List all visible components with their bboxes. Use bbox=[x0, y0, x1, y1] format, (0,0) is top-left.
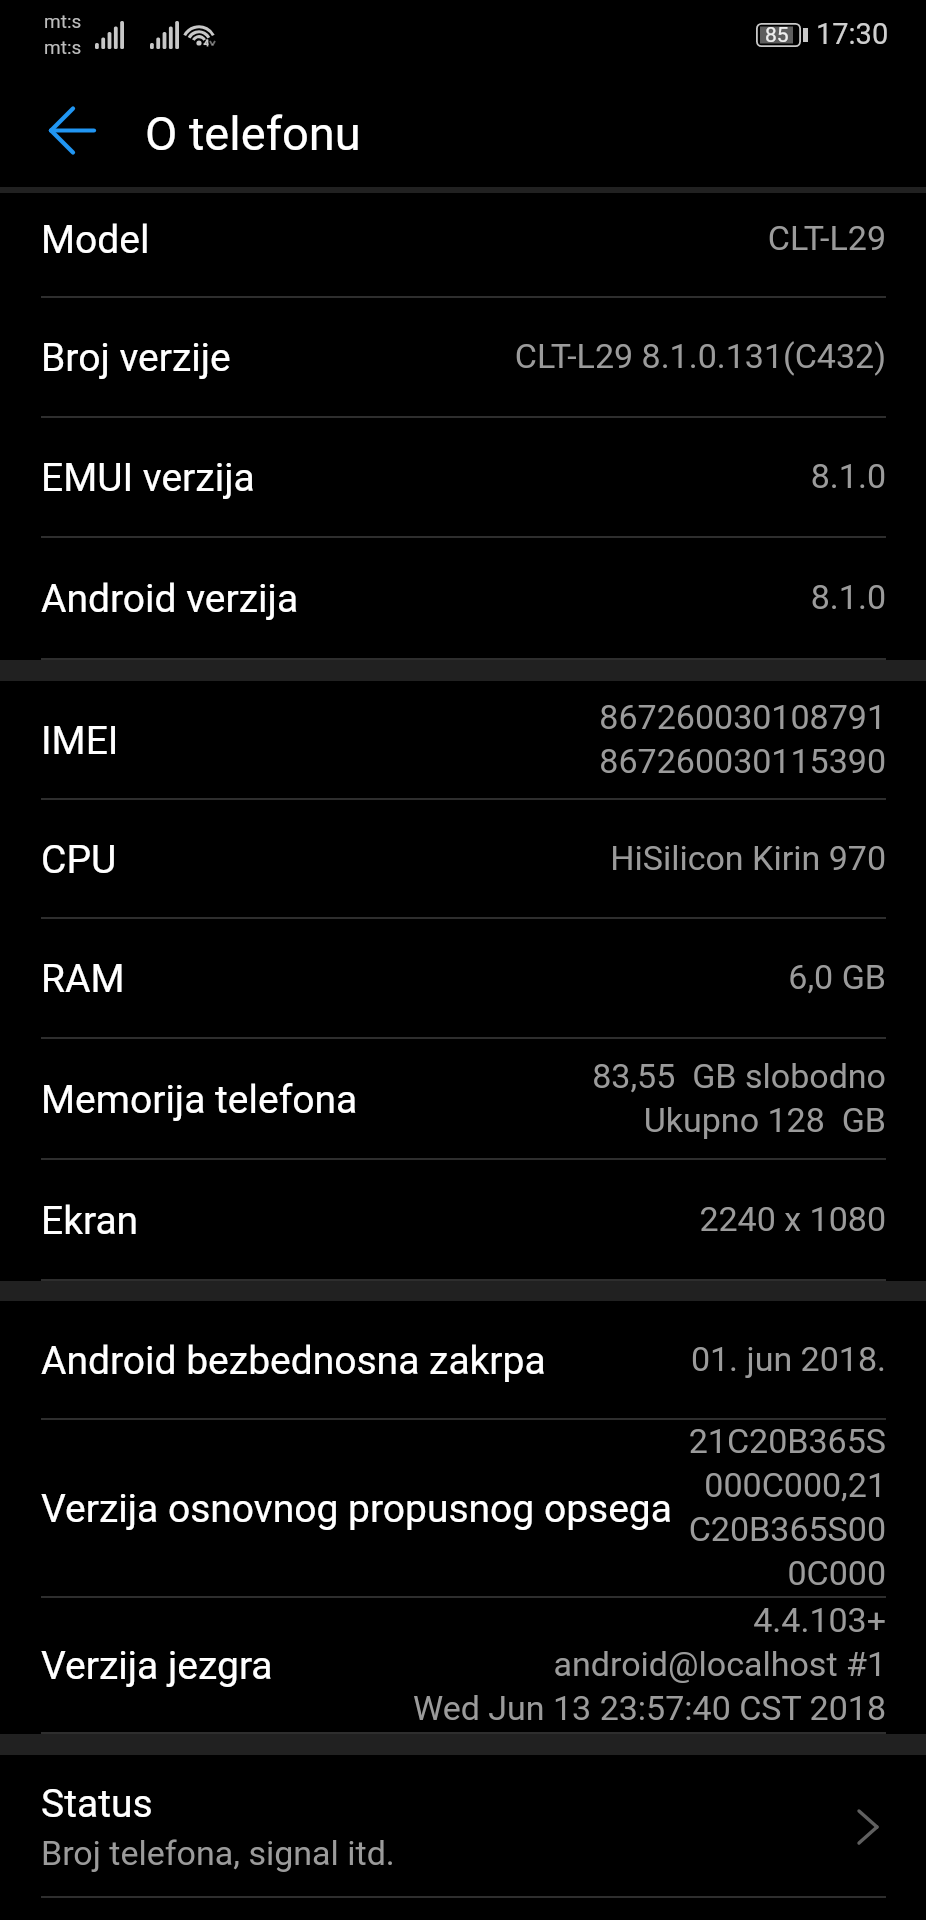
staticText: 8.1.0 bbox=[326, 456, 886, 496]
button[interactable]: Model bbox=[0, 193, 926, 298]
staticText: 2240 x 1080 bbox=[326, 1199, 886, 1239]
staticText: 867260030115390 bbox=[326, 741, 886, 781]
staticText: EMUI verzija bbox=[41, 455, 255, 501]
staticText: Android bezbednosna zakrpa bbox=[41, 1338, 546, 1384]
staticText: Wed Jun 13 23:57:40 CST 2018 bbox=[406, 1688, 886, 1728]
staticText: RAM bbox=[41, 956, 125, 1002]
staticText: 21C20B365S bbox=[686, 1421, 886, 1461]
staticText: Status bbox=[41, 1781, 153, 1827]
staticText: Ukupno 128 GB bbox=[358, 1100, 886, 1140]
staticText: 867260030108791 bbox=[326, 697, 886, 737]
button[interactable]: EMUI verzija bbox=[0, 418, 926, 538]
staticText: Android verzija bbox=[41, 576, 299, 622]
staticText: Broj verzije bbox=[41, 335, 231, 381]
button[interactable]: Ekran bbox=[0, 1160, 926, 1281]
staticText: 01. jun 2018. bbox=[546, 1339, 886, 1379]
staticText: O telefonu bbox=[145, 106, 361, 161]
staticText: Verzija osnovnog propusnog opsega bbox=[41, 1486, 672, 1532]
button[interactable]: CPU bbox=[0, 800, 926, 919]
button[interactable]: Back bbox=[0, 75, 118, 187]
staticText: Verzija jezgra bbox=[41, 1643, 273, 1689]
staticText: HiSilicon Kirin 970 bbox=[326, 838, 886, 878]
staticText: mt:s bbox=[44, 10, 82, 32]
staticText: Broj telefona, signal itd. bbox=[41, 1833, 395, 1873]
staticText: 6,0 GB bbox=[326, 957, 886, 997]
staticText: CLT-L29 8.1.0.131(C432) bbox=[326, 336, 886, 376]
button[interactable]: Broj verzije bbox=[0, 298, 926, 418]
staticText: C20B365S00 bbox=[686, 1509, 886, 1549]
staticText: android@localhost #1 bbox=[406, 1644, 886, 1684]
staticText: 85 bbox=[765, 23, 789, 47]
button[interactable]: Android bezbednosna zakrpa bbox=[0, 1301, 926, 1420]
button[interactable]: Verzija jezgra bbox=[0, 1598, 926, 1734]
button[interactable]: Memorija telefona bbox=[0, 1039, 926, 1160]
staticText: 0C000 bbox=[686, 1553, 886, 1593]
button[interactable]: Android verzija bbox=[0, 538, 926, 660]
staticText: 17:30 bbox=[816, 17, 889, 51]
button[interactable]: RAM bbox=[0, 919, 926, 1039]
staticText: Memorija telefona bbox=[41, 1077, 358, 1123]
staticText: CLT-L29 bbox=[326, 218, 886, 258]
staticText: 83,55 GB slobodno bbox=[358, 1056, 886, 1096]
button[interactable]: IMEI bbox=[0, 681, 926, 800]
button[interactable]: Status bbox=[0, 1755, 926, 1898]
staticText: mt:s bbox=[44, 36, 82, 58]
staticText: Model bbox=[41, 217, 150, 263]
staticText: CPU bbox=[41, 837, 117, 883]
staticText: 8.1.0 bbox=[326, 577, 886, 617]
staticText: 000C000,21 bbox=[686, 1465, 886, 1505]
staticText: 4.4.103+ bbox=[406, 1600, 886, 1640]
staticText: IMEI bbox=[41, 718, 119, 764]
staticText: Ekran bbox=[41, 1198, 139, 1244]
button[interactable]: Verzija osnovnog propusnog opsega bbox=[0, 1420, 926, 1598]
